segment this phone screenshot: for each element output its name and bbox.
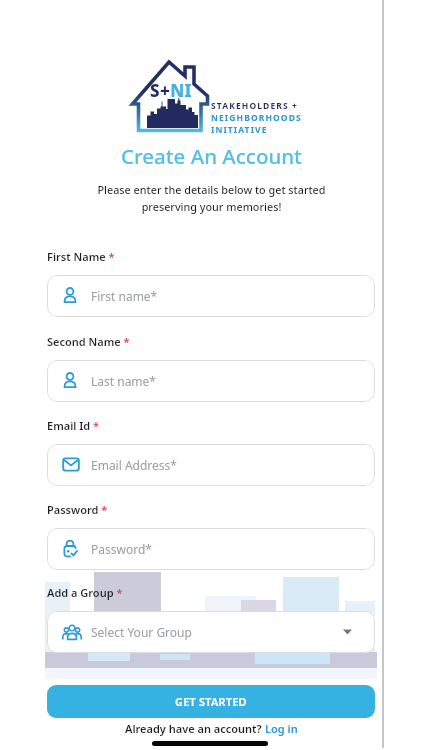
staticText: Log in	[265, 721, 298, 736]
staticText: Password *	[47, 502, 108, 517]
button[interactable]: Password*	[47, 528, 375, 570]
staticText: S+NI	[150, 79, 193, 102]
staticText: Please enter the details below to get st…	[97, 182, 326, 214]
staticText: INITIATIVE	[211, 124, 268, 136]
staticText: First Name *	[47, 249, 115, 264]
staticText: Last name*	[91, 373, 156, 389]
staticText: Add a Group *	[47, 585, 123, 600]
staticText: Create An Account	[121, 142, 302, 170]
staticText: NEIGHBORHOODS	[211, 112, 302, 124]
staticText: GET STARTED	[175, 694, 247, 709]
button[interactable]: GET STARTED	[47, 685, 375, 718]
staticText: First name*	[91, 288, 158, 304]
staticText: Password*	[91, 541, 152, 557]
button[interactable]: First name*	[47, 275, 375, 317]
staticText: Select Your Group	[91, 624, 192, 640]
button[interactable]: Last name*	[47, 360, 375, 402]
button[interactable]: Select Your Group	[47, 611, 375, 653]
button[interactable]: Email Address*	[47, 444, 375, 486]
staticText: STAKEHOLDERS +	[211, 100, 298, 112]
staticText: Already have an account?	[125, 721, 265, 736]
staticText: Email Id *	[47, 418, 100, 433]
staticText: Email Address*	[91, 457, 177, 473]
staticText: Second Name *	[47, 334, 130, 349]
button[interactable]: Already have an account?	[125, 721, 298, 736]
